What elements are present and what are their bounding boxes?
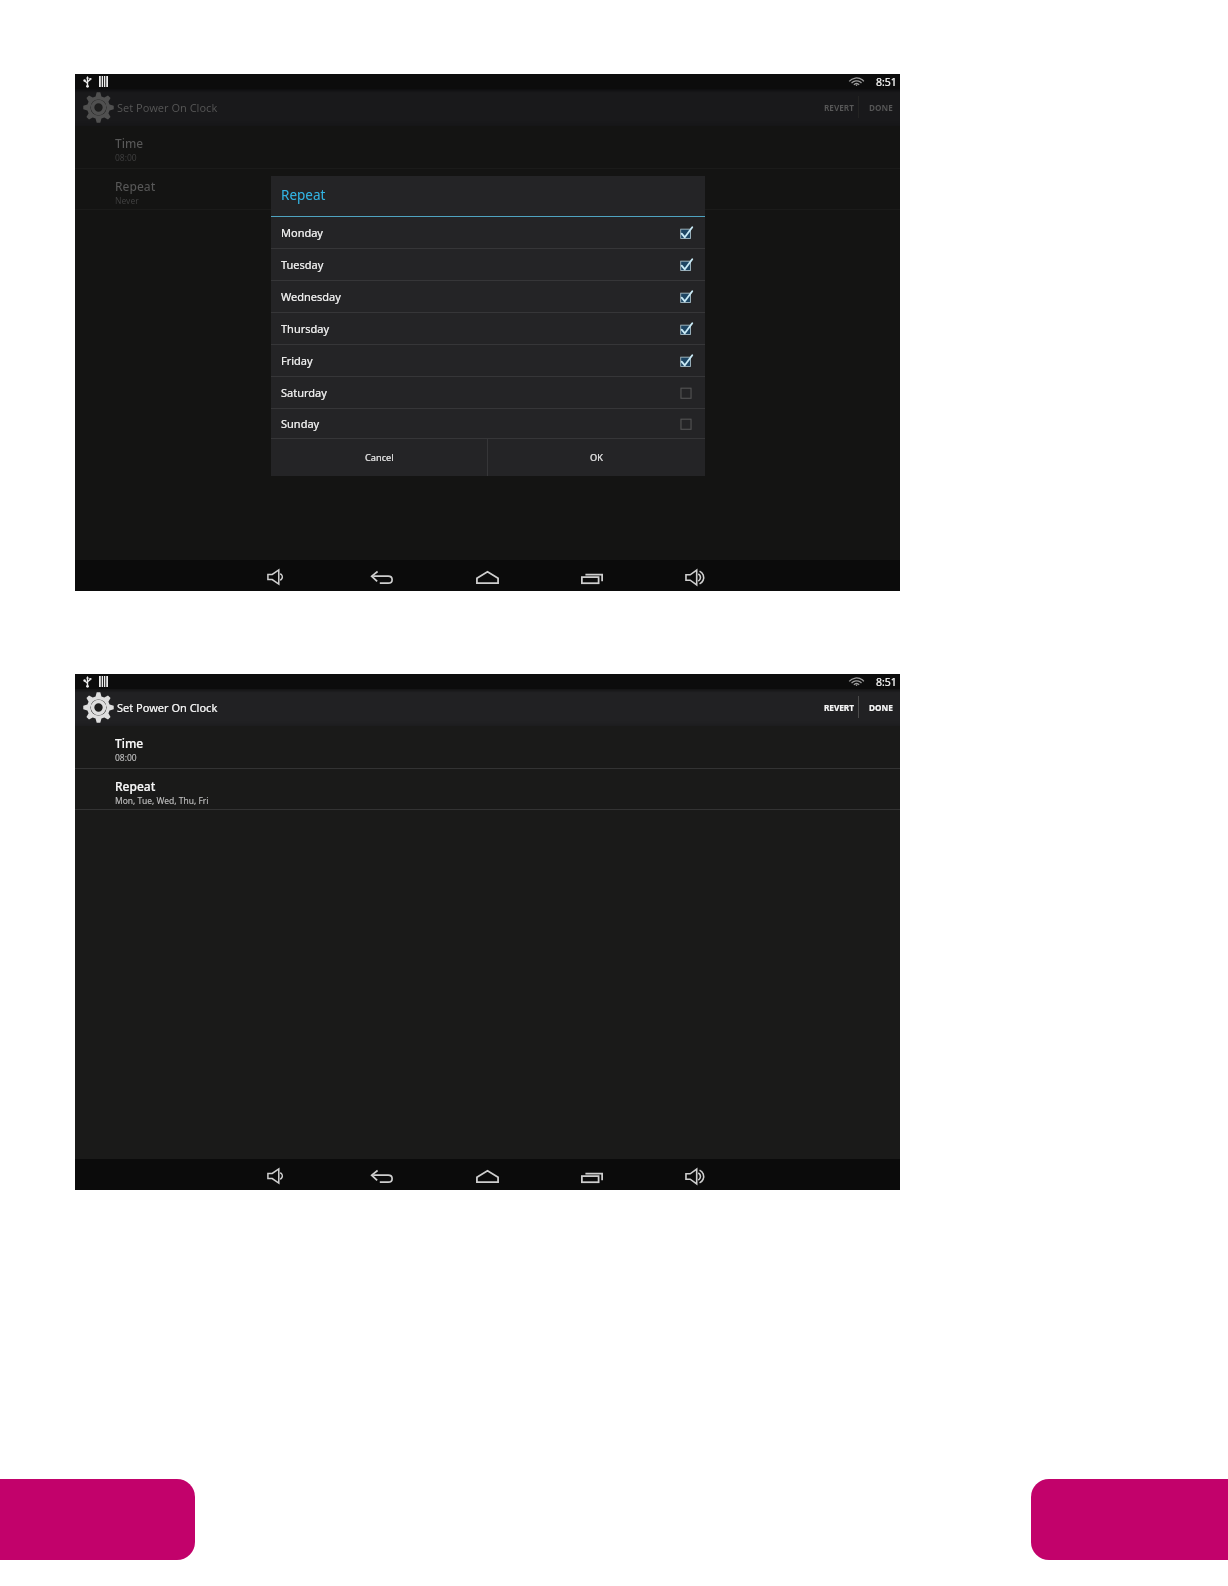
button[interactable]: Wednesday: [271, 281, 705, 312]
staticText: Saturday: [281, 385, 327, 400]
button[interactable]: [1031, 1479, 1228, 1560]
staticText: Repeat: [115, 178, 156, 194]
staticText: DONE: [869, 702, 893, 713]
staticText: Mon, Tue, Wed, Thu, Fri: [115, 795, 209, 807]
staticText: 08:00: [115, 752, 137, 764]
staticText: Sunday: [281, 416, 320, 431]
staticText: 08:00: [115, 152, 137, 164]
button[interactable]: [0, 1479, 195, 1560]
button[interactable]: Thursday: [271, 313, 705, 344]
button[interactable]: Time: [75, 126, 900, 168]
staticText: Thursday: [281, 321, 330, 336]
button[interactable]: Repeat: [75, 169, 900, 209]
staticText: Cancel: [365, 451, 394, 464]
button[interactable]: Sunday: [271, 409, 705, 438]
button[interactable]: REVERT: [819, 89, 859, 126]
staticText: REVERT: [824, 102, 854, 113]
button[interactable]: Volume up: [682, 1162, 710, 1190]
staticText: DONE: [869, 102, 893, 113]
staticText: 8:51: [876, 675, 897, 689]
staticText: Wednesday: [281, 289, 341, 304]
staticText: 8:51: [876, 75, 897, 89]
button[interactable]: Repeat: [75, 769, 900, 809]
button[interactable]: Volume up: [682, 563, 710, 591]
staticText: Repeat: [115, 778, 156, 794]
staticText: REVERT: [824, 702, 854, 713]
staticText: OK: [590, 451, 603, 464]
button[interactable]: Cancel: [271, 439, 487, 476]
button[interactable]: DONE: [864, 89, 898, 126]
button[interactable]: DONE: [864, 689, 898, 726]
button[interactable]: Monday: [271, 217, 705, 248]
staticText: Friday: [281, 353, 313, 368]
staticText: Monday: [281, 225, 323, 240]
button[interactable]: Back: [368, 1162, 396, 1190]
button[interactable]: Recent apps: [578, 563, 606, 591]
button[interactable]: Tuesday: [271, 249, 705, 280]
button[interactable]: Volume down: [263, 1162, 291, 1190]
button[interactable]: Time: [75, 726, 900, 768]
button[interactable]: Saturday: [271, 377, 705, 408]
staticText: Time: [115, 735, 144, 751]
button[interactable]: OK: [488, 439, 705, 476]
button[interactable]: Back: [368, 563, 396, 591]
staticText: Never: [115, 195, 139, 207]
staticText: Set Power On Clock: [117, 100, 218, 115]
button[interactable]: Recent apps: [578, 1162, 606, 1190]
button[interactable]: Volume down: [263, 563, 291, 591]
staticText: Time: [115, 135, 144, 151]
button[interactable]: Home: [473, 563, 501, 591]
staticText: Tuesday: [281, 257, 324, 272]
staticText: Repeat: [281, 186, 326, 204]
button[interactable]: Friday: [271, 345, 705, 376]
button[interactable]: Home: [473, 1162, 501, 1190]
button[interactable]: REVERT: [819, 689, 859, 726]
staticText: Set Power On Clock: [117, 700, 218, 715]
